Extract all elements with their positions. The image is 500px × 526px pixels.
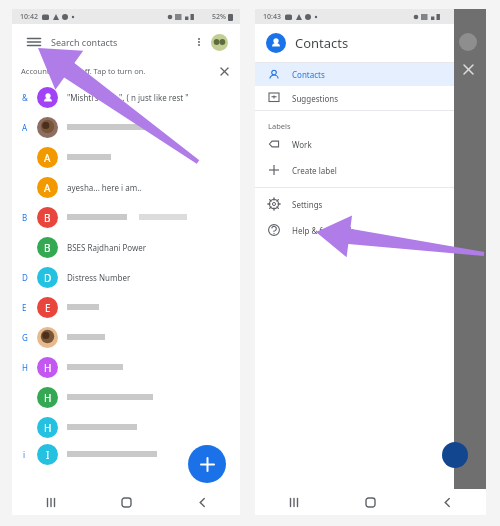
- button[interactable]: Recents: [255, 489, 332, 515]
- button[interactable]: E: [12, 292, 240, 322]
- button[interactable]: Suggestions: [255, 86, 486, 110]
- staticText: &: [22, 92, 28, 103]
- staticText: Accountability is off. Tap to turn on.: [21, 66, 219, 76]
- button[interactable]: H: [12, 412, 240, 442]
- button[interactable]: A: [12, 142, 240, 172]
- staticText: ayesha... here i am..: [67, 182, 142, 193]
- button[interactable]: Create contact: [188, 445, 226, 483]
- staticText: Search contacts: [51, 36, 192, 48]
- staticText: A: [44, 151, 51, 165]
- button[interactable]: Contacts: [255, 24, 486, 62]
- staticText: Help & feedback: [292, 225, 354, 236]
- button[interactable]: Accountability is off. Tap to turn on.: [12, 60, 240, 82]
- staticText: Contacts: [292, 69, 454, 80]
- button[interactable]: Settings: [255, 191, 486, 217]
- button[interactable]: Contacts: [255, 63, 474, 86]
- staticText: BSES Rajdhani Power: [67, 242, 147, 253]
- staticText: I: [46, 448, 50, 462]
- button[interactable]: Account: [211, 34, 228, 51]
- staticText: Work: [292, 139, 312, 150]
- button[interactable]: Work: [255, 131, 486, 157]
- button[interactable]: Open navigation drawer: [26, 34, 42, 50]
- button[interactable]: D: [12, 262, 240, 292]
- staticText: 10:42: [20, 12, 38, 22]
- button[interactable]: G: [12, 322, 240, 352]
- button[interactable]: &: [12, 82, 240, 112]
- button[interactable]: Create label: [255, 157, 486, 183]
- button[interactable]: Open navigation drawer: [17, 28, 235, 56]
- staticText: G: [22, 332, 28, 343]
- button[interactable]: Close: [463, 64, 474, 75]
- staticText: Settings: [292, 199, 323, 210]
- button[interactable]: Home: [332, 489, 409, 515]
- button[interactable]: A: [12, 112, 240, 142]
- button[interactable]: More options: [192, 35, 206, 49]
- button[interactable]: B: [12, 202, 240, 232]
- staticText: H: [44, 391, 52, 405]
- button[interactable]: H: [12, 352, 240, 382]
- staticText: 52%: [212, 12, 226, 22]
- staticText: E: [45, 301, 51, 315]
- staticText: H: [22, 362, 28, 373]
- button[interactable]: Back: [409, 489, 486, 515]
- staticText: A: [22, 122, 28, 133]
- button[interactable]: i: [12, 442, 240, 466]
- staticText: Create label: [292, 165, 337, 176]
- staticText: B: [22, 212, 28, 223]
- staticText: B: [44, 241, 51, 255]
- staticText: D: [22, 272, 28, 283]
- button[interactable]: A: [12, 172, 240, 202]
- staticText: D: [44, 271, 52, 285]
- button[interactable]: B: [12, 232, 240, 262]
- staticText: "Mishti's best ". ( n just like rest ": [67, 92, 189, 103]
- staticText: Suggestions: [292, 93, 470, 104]
- staticText: A: [44, 181, 51, 195]
- button[interactable]: Help & feedback: [255, 217, 486, 243]
- button[interactable]: H: [12, 382, 240, 412]
- staticText: E: [22, 302, 27, 313]
- staticText: H: [44, 361, 52, 375]
- staticText: 10:43: [263, 12, 281, 22]
- staticText: Labels: [268, 121, 291, 131]
- button[interactable]: Recents: [12, 489, 88, 515]
- staticText: i: [23, 449, 26, 460]
- button[interactable]: Dismiss: [219, 66, 230, 77]
- staticText: H: [44, 421, 52, 435]
- button[interactable]: Home: [88, 489, 164, 515]
- staticText: B: [44, 211, 51, 225]
- button[interactable]: Back: [164, 489, 240, 515]
- staticText: Distress Number: [67, 272, 131, 283]
- staticText: Contacts: [295, 34, 349, 52]
